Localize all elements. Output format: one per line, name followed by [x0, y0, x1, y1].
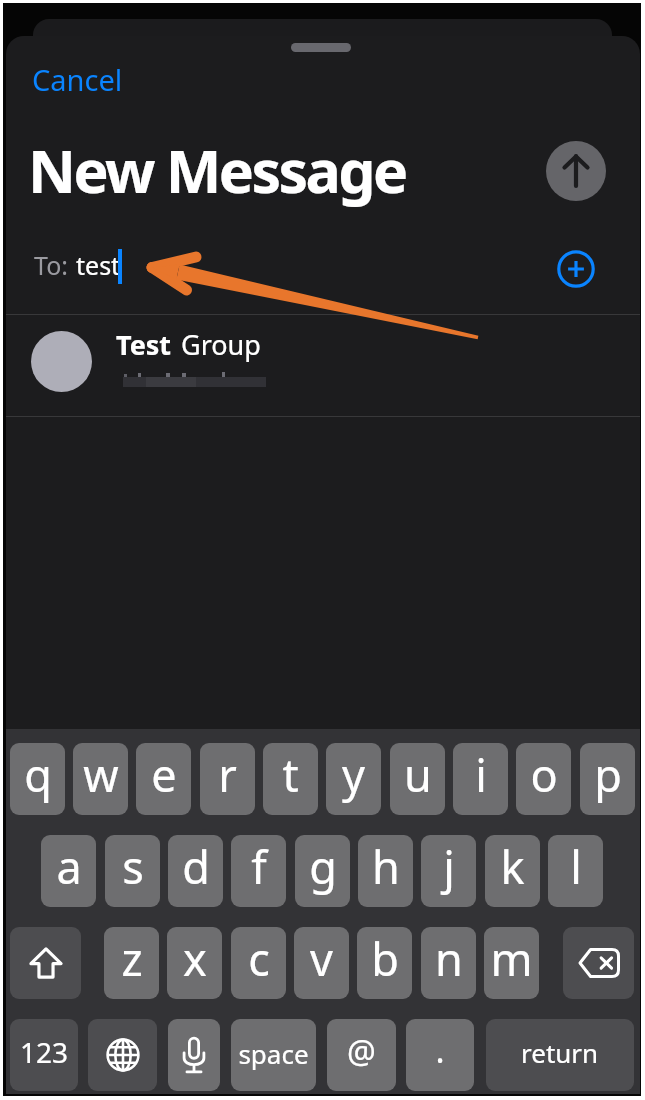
button[interactable]: return — [486, 1019, 634, 1091]
button[interactable]: shift — [10, 927, 81, 999]
staticText: k — [500, 836, 525, 897]
staticText: x — [183, 928, 207, 989]
button[interactable]: . — [406, 1019, 474, 1091]
button[interactable]: space — [231, 1019, 316, 1091]
staticText: f — [251, 836, 267, 897]
staticText: . — [435, 1027, 445, 1073]
button[interactable]: Test — [6, 315, 640, 416]
staticText: Test — [116, 326, 172, 363]
staticText: r — [218, 744, 237, 805]
staticText: o — [530, 744, 558, 805]
button[interactable]: y — [326, 743, 381, 815]
button[interactable]: j — [421, 835, 476, 907]
staticText: p — [594, 744, 622, 805]
staticText: Cancel — [32, 60, 123, 99]
staticText: space — [238, 1036, 309, 1071]
staticText: @ — [347, 1030, 376, 1074]
staticText: n — [435, 928, 463, 989]
button[interactable]: l — [548, 835, 603, 907]
staticText: u — [404, 744, 432, 805]
button[interactable]: m — [484, 927, 539, 999]
staticText: l — [570, 836, 582, 897]
staticText: c — [248, 928, 270, 989]
staticText: 123 — [20, 1033, 69, 1071]
button[interactable]: Cancel — [28, 56, 127, 103]
button[interactable]: w — [73, 743, 128, 815]
button[interactable]: globe — [88, 1019, 157, 1091]
button[interactable]: t — [263, 743, 318, 815]
staticText: return — [521, 1035, 599, 1070]
staticText: To: — [34, 248, 68, 282]
button[interactable]: f — [231, 835, 286, 907]
staticText: New Message — [28, 130, 406, 210]
button[interactable]: o — [516, 743, 571, 815]
staticText: d — [182, 836, 210, 897]
staticText: test — [76, 248, 121, 282]
button[interactable]: z — [104, 927, 159, 999]
staticText: t — [282, 744, 299, 805]
staticText: j — [443, 836, 455, 897]
button[interactable]: b — [357, 927, 412, 999]
button[interactable]: s — [105, 835, 160, 907]
staticText: i — [475, 744, 487, 805]
staticText: w — [83, 744, 119, 805]
button[interactable]: i — [453, 743, 508, 815]
button[interactable]: k — [485, 835, 540, 907]
button[interactable]: backspace — [563, 927, 634, 999]
staticText: m — [490, 928, 533, 989]
staticText: g — [309, 836, 337, 897]
staticText: Group — [181, 326, 261, 363]
button[interactable]: h — [358, 835, 413, 907]
staticText: q — [24, 744, 52, 805]
button[interactable]: p — [580, 743, 635, 815]
button[interactable]: u — [390, 743, 445, 815]
button[interactable]: v — [294, 927, 349, 999]
button[interactable]: q — [10, 743, 65, 815]
button[interactable]: Add contact — [553, 246, 599, 292]
button[interactable]: @ — [327, 1019, 396, 1091]
button[interactable]: Send — [546, 141, 606, 201]
button[interactable]: c — [231, 927, 286, 999]
button[interactable]: e — [136, 743, 191, 815]
staticText: v — [310, 928, 333, 989]
staticText: a — [56, 836, 82, 897]
staticText: e — [151, 744, 177, 805]
staticText: b — [371, 928, 399, 989]
staticText: y — [342, 744, 365, 805]
button[interactable]: r — [200, 743, 255, 815]
button[interactable]: 123 — [10, 1019, 78, 1091]
button[interactable]: a — [41, 835, 96, 907]
button[interactable]: g — [295, 835, 350, 907]
button[interactable]: x — [167, 927, 222, 999]
staticText: z — [121, 928, 143, 989]
button[interactable]: n — [421, 927, 476, 999]
button[interactable]: d — [168, 835, 223, 907]
staticText: s — [122, 836, 144, 897]
staticText: h — [372, 836, 400, 897]
button[interactable]: mic — [168, 1019, 220, 1091]
